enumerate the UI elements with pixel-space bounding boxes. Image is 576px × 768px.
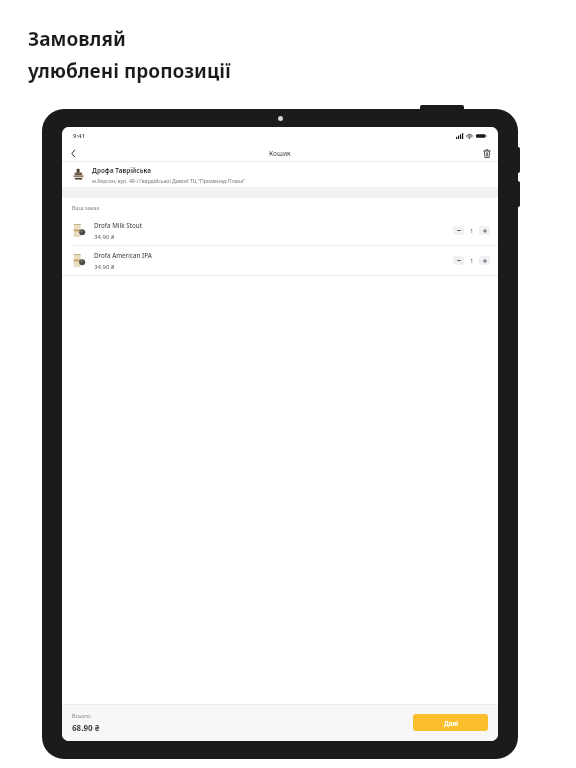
button[interactable]: Increase quantity — [479, 226, 490, 235]
button[interactable]: Drofa Milk Stout — [72, 216, 490, 245]
staticText: 68.90 ₴ — [72, 722, 100, 733]
staticText: Дрофа Таврійська — [92, 166, 151, 175]
button[interactable]: Clear cart — [476, 144, 498, 162]
staticText: Далі — [444, 719, 458, 727]
staticText: 34.90 ₴ — [94, 263, 115, 271]
button[interactable]: Далі — [413, 714, 488, 731]
button[interactable]: Drofa American IPA — [72, 246, 490, 275]
staticText: 1 — [470, 257, 474, 265]
staticText: м.Херсон, вул. 49-і Гвардійської Дивізії… — [92, 177, 246, 184]
staticText: Drofa Milk Stout — [94, 221, 143, 229]
button[interactable]: Decrease quantity — [453, 256, 464, 265]
staticText: 1 — [470, 227, 474, 235]
staticText: улюблені пропозиції — [28, 58, 231, 84]
staticText: Drofa American IPA — [94, 251, 152, 259]
staticText: Кошик — [269, 149, 291, 158]
staticText: 9:41 — [73, 132, 85, 140]
staticText: Замовляй — [28, 26, 126, 52]
staticText: Всього: — [72, 712, 92, 719]
staticText: Ваш заказ — [72, 204, 100, 211]
staticText: 34.90 ₴ — [94, 233, 115, 241]
button[interactable]: Decrease quantity — [453, 226, 464, 235]
button[interactable]: Дрофа Таврійська — [72, 162, 498, 187]
button[interactable]: Back — [62, 144, 84, 162]
button[interactable]: Increase quantity — [479, 256, 490, 265]
